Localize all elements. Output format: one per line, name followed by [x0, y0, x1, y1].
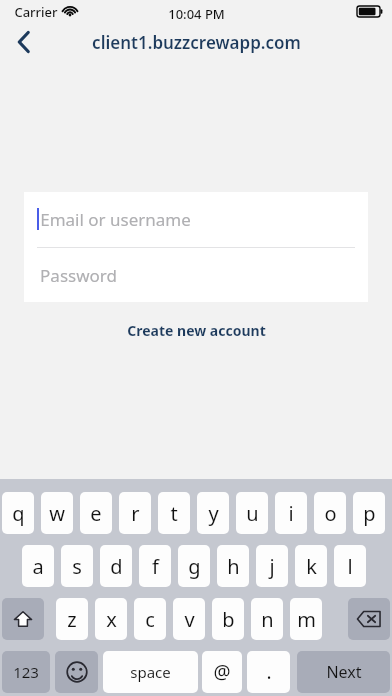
staticText: r: [131, 500, 140, 527]
button[interactable]: .: [247, 651, 290, 693]
staticText: d: [110, 553, 123, 580]
staticText: space: [130, 662, 171, 682]
staticText: @: [213, 659, 231, 685]
staticText: b: [222, 606, 235, 633]
button[interactable]: Email or username: [24, 192, 368, 247]
button[interactable]: w: [41, 492, 73, 534]
button[interactable]: @: [202, 651, 242, 693]
button[interactable]: e: [80, 492, 112, 534]
button[interactable]: n: [251, 598, 283, 640]
button[interactable]: Backspace: [348, 598, 390, 640]
staticText: 123: [13, 662, 39, 682]
staticText: Carrier: [14, 3, 58, 21]
staticText: e: [90, 500, 102, 527]
button[interactable]: a: [22, 545, 54, 587]
button[interactable]: Create new account: [121, 318, 272, 343]
staticText: t: [170, 500, 178, 527]
button[interactable]: j: [256, 545, 288, 587]
button[interactable]: d: [100, 545, 132, 587]
staticText: g: [188, 553, 201, 580]
staticText: l: [347, 553, 353, 580]
button[interactable]: l: [334, 545, 366, 587]
staticText: f: [152, 553, 159, 580]
staticText: Next: [326, 661, 362, 683]
button[interactable]: c: [134, 598, 166, 640]
button[interactable]: space: [103, 651, 198, 693]
staticText: c: [145, 606, 155, 633]
button[interactable]: Shift: [2, 598, 44, 640]
staticText: .: [266, 659, 272, 685]
staticText: k: [306, 553, 317, 580]
staticText: h: [227, 553, 240, 580]
button[interactable]: u: [236, 492, 268, 534]
staticText: Create new account: [127, 321, 266, 340]
button[interactable]: Back: [2, 22, 46, 62]
staticText: Email or username: [40, 208, 191, 231]
button[interactable]: b: [212, 598, 244, 640]
staticText: a: [32, 553, 44, 580]
button[interactable]: y: [197, 492, 229, 534]
button[interactable]: Emoji: [55, 651, 98, 693]
button[interactable]: o: [314, 492, 346, 534]
staticText: n: [261, 606, 274, 633]
staticText: y: [208, 500, 219, 527]
button[interactable]: m: [290, 598, 322, 640]
button[interactable]: p: [353, 492, 385, 534]
staticText: z: [67, 606, 77, 633]
button[interactable]: s: [61, 545, 93, 587]
button[interactable]: Next: [297, 651, 390, 693]
staticText: client1.buzzcrewapp.com: [92, 31, 301, 54]
button[interactable]: v: [173, 598, 205, 640]
staticText: i: [288, 500, 294, 527]
button[interactable]: z: [56, 598, 88, 640]
button[interactable]: r: [119, 492, 151, 534]
staticText: j: [269, 553, 275, 580]
staticText: o: [324, 500, 337, 527]
staticText: w: [49, 500, 65, 527]
staticText: m: [297, 606, 316, 633]
button[interactable]: q: [2, 492, 34, 534]
button[interactable]: t: [158, 492, 190, 534]
button[interactable]: h: [217, 545, 249, 587]
button[interactable]: k: [295, 545, 327, 587]
button[interactable]: 123: [2, 651, 50, 693]
button[interactable]: Password: [24, 248, 368, 302]
staticText: 10:04 PM: [168, 5, 225, 23]
staticText: p: [363, 500, 376, 527]
staticText: Password: [40, 264, 117, 287]
staticText: u: [246, 500, 259, 527]
button[interactable]: g: [178, 545, 210, 587]
staticText: x: [106, 606, 117, 633]
button[interactable]: x: [95, 598, 127, 640]
staticText: v: [184, 606, 195, 633]
button[interactable]: f: [139, 545, 171, 587]
button[interactable]: i: [275, 492, 307, 534]
staticText: q: [12, 500, 25, 527]
staticText: s: [72, 553, 82, 580]
